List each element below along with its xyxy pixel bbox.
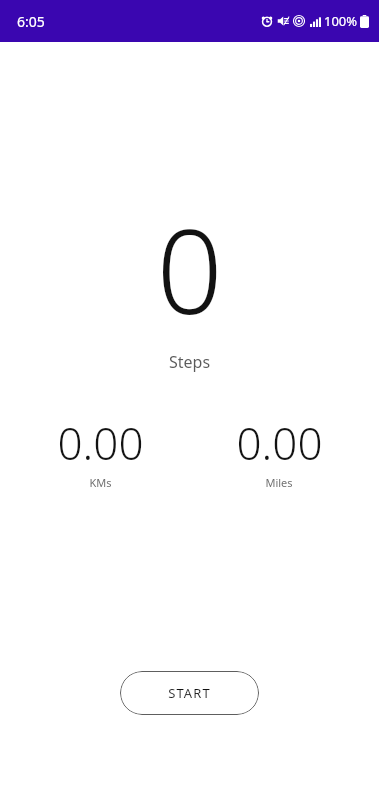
staticText: 100% [324,12,358,30]
staticText: 0.00 [57,413,144,473]
staticText: Miles [265,475,293,490]
staticText: Steps [0,351,379,373]
staticText: START [168,684,211,702]
staticText: 0.00 [236,413,323,473]
staticText: KMs [89,475,112,490]
button[interactable]: START [120,671,259,715]
staticText: 6:05 [17,12,45,31]
staticText: 0 [0,190,379,348]
